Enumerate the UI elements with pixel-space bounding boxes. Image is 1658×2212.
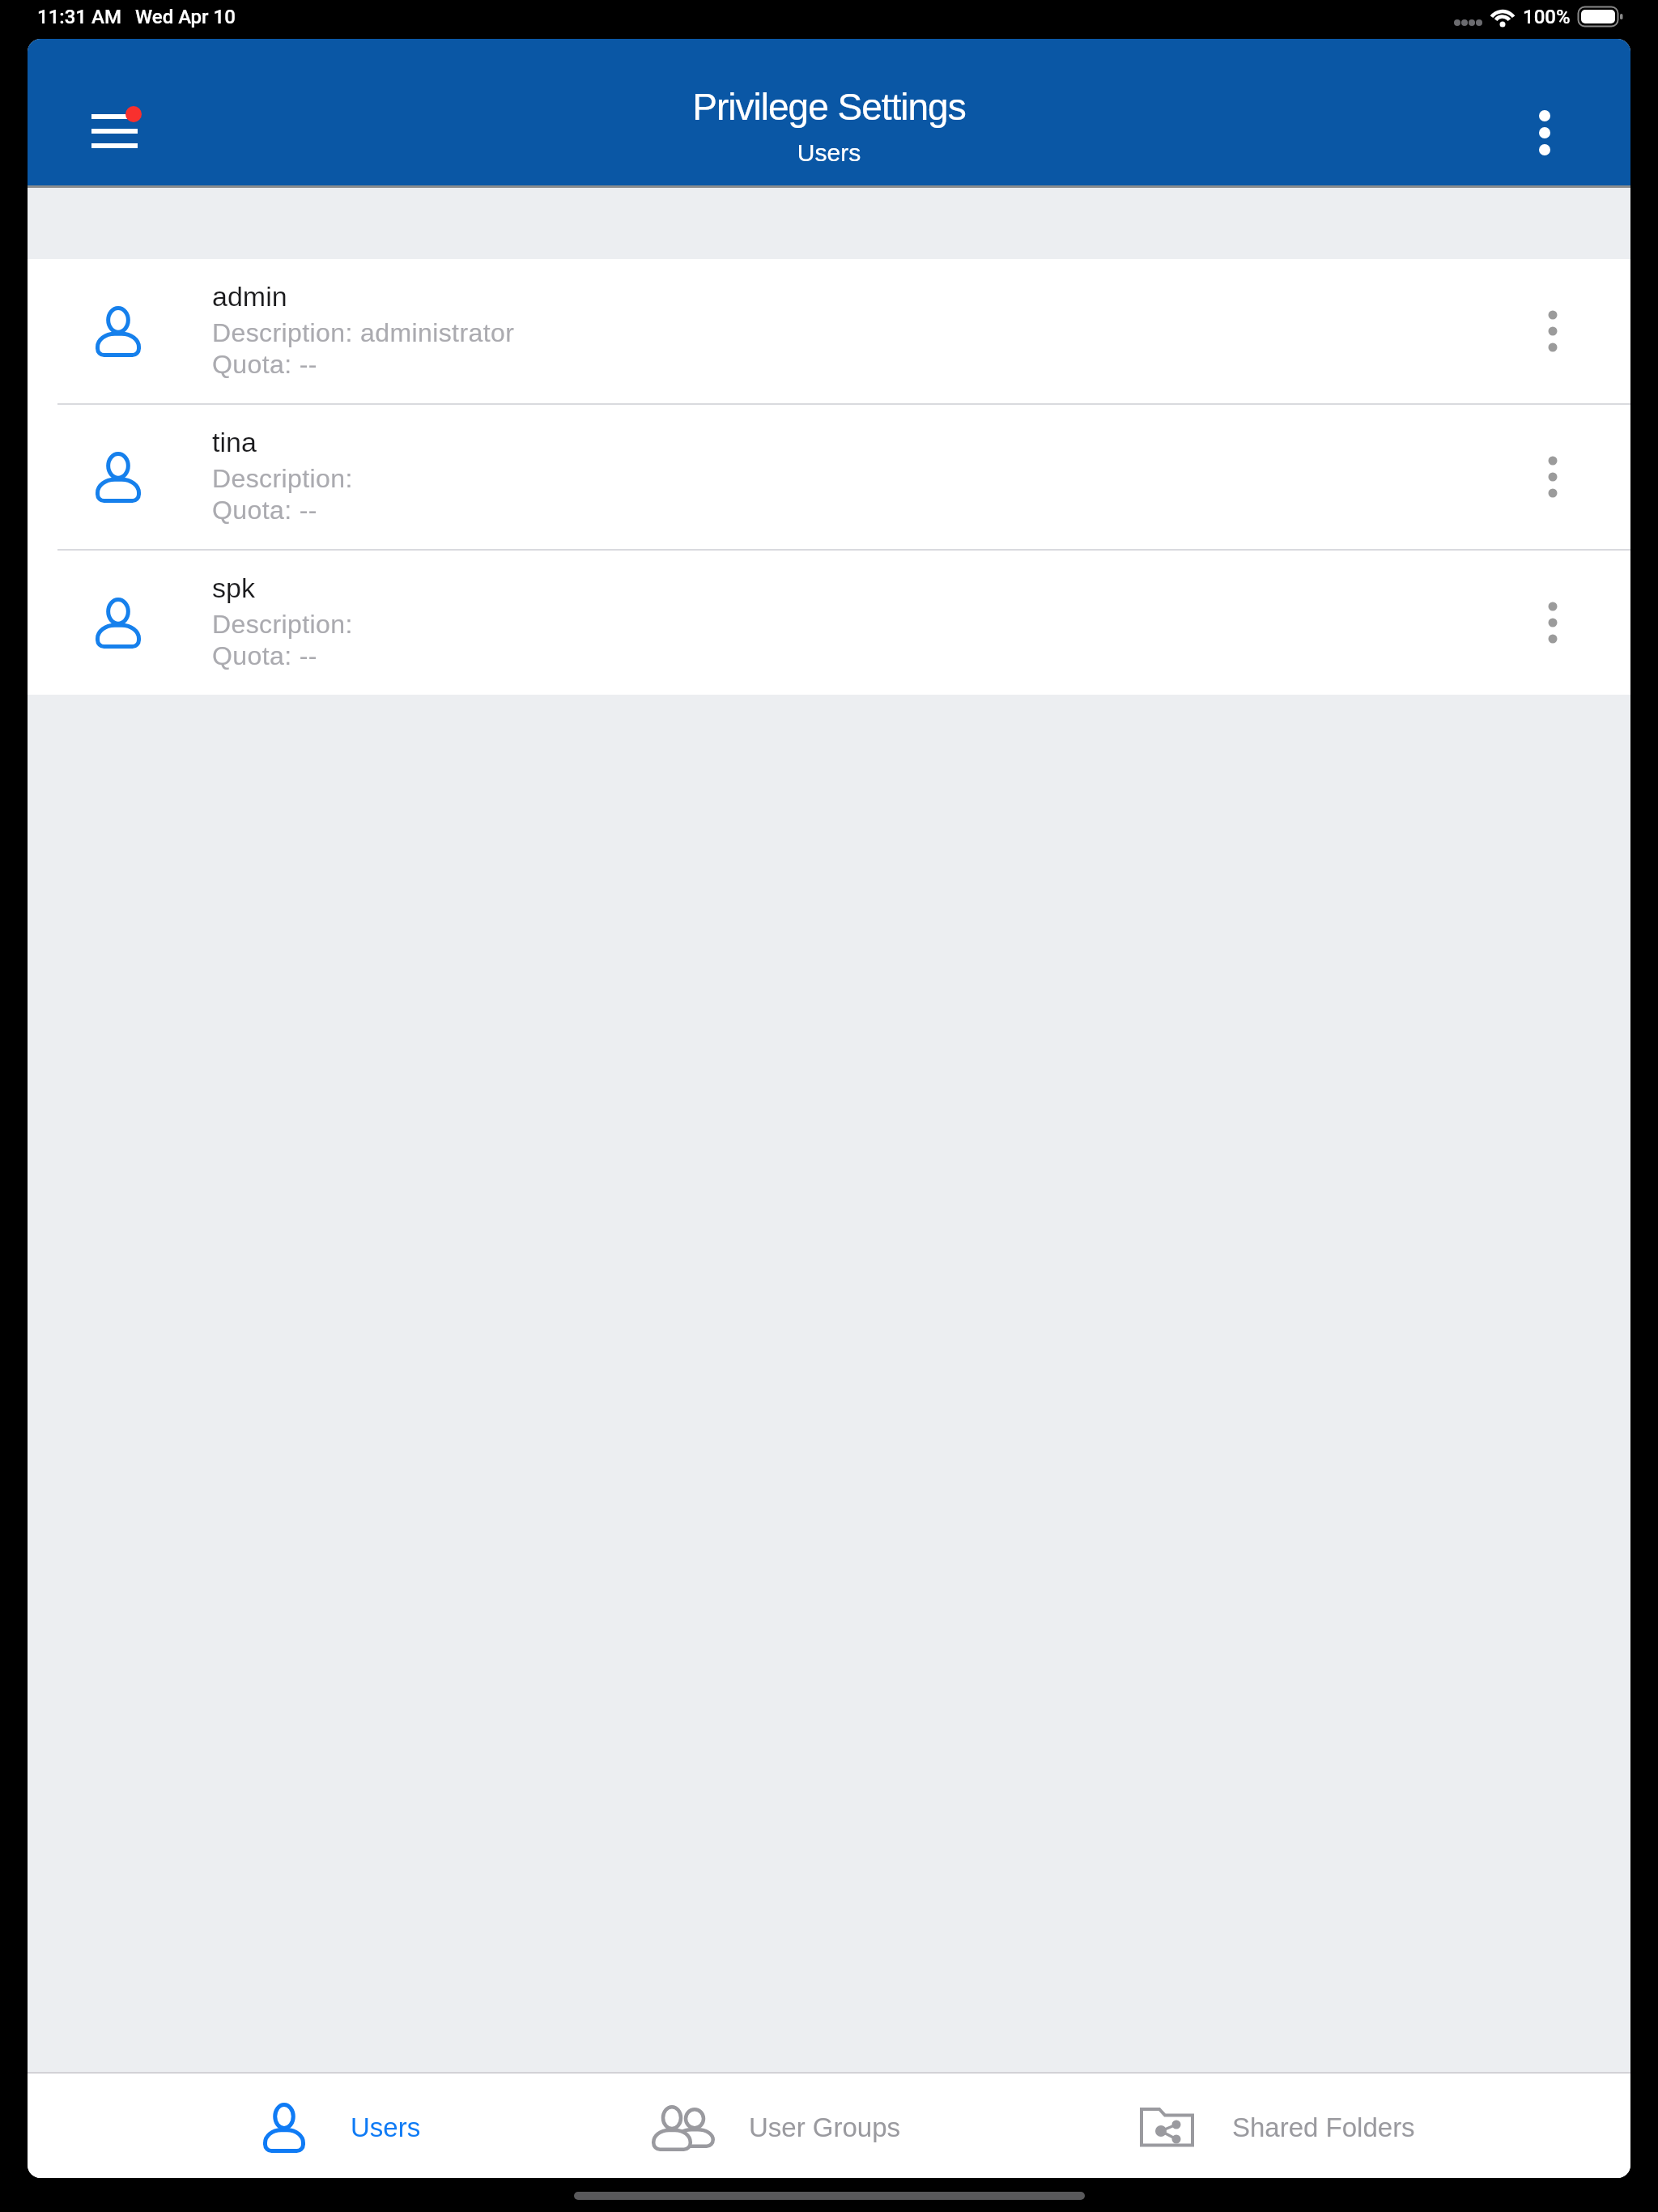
button[interactable] xyxy=(72,91,161,168)
button[interactable] xyxy=(1512,582,1593,663)
staticText: User Groups xyxy=(749,2112,901,2142)
staticText: 11:31 AM xyxy=(37,6,121,28)
button[interactable] xyxy=(1512,436,1593,517)
staticText: Users xyxy=(351,2112,421,2142)
button[interactable]: spk xyxy=(28,551,1630,695)
staticText: tina xyxy=(212,427,257,457)
staticText: admin xyxy=(212,281,287,312)
button[interactable]: tina xyxy=(28,405,1630,549)
button[interactable] xyxy=(1512,291,1593,372)
staticText: Description: xyxy=(212,464,353,493)
button[interactable]: admin xyxy=(28,259,1630,403)
staticText: Shared Folders xyxy=(1232,2112,1415,2142)
staticText: spk xyxy=(212,572,255,603)
button[interactable] xyxy=(1504,91,1585,172)
staticText: Description: administrator xyxy=(212,318,515,347)
staticText: Privilege Settings xyxy=(28,86,1630,127)
staticText: Users xyxy=(28,139,1630,167)
button[interactable] xyxy=(562,2074,1096,2178)
staticText: Quota: -- xyxy=(212,641,317,670)
staticText: Wed Apr 10 xyxy=(135,6,236,28)
staticText: Description: xyxy=(212,610,353,639)
staticText: 100% xyxy=(1523,6,1571,28)
button[interactable] xyxy=(1096,2074,1630,2178)
staticText: Quota: -- xyxy=(212,496,317,525)
staticText: Quota: -- xyxy=(212,350,317,379)
button[interactable] xyxy=(28,2074,562,2178)
